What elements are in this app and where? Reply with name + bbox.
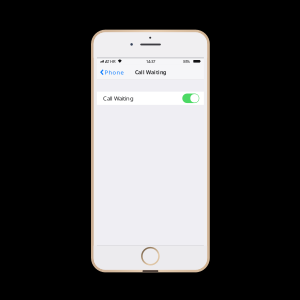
staticText: Call Waiting: [103, 94, 134, 102]
staticText: Phone: [105, 68, 124, 76]
staticText: 93%: [182, 58, 189, 64]
staticText: Call Waiting: [135, 69, 166, 76]
staticText: AT HR: [105, 58, 116, 64]
button[interactable]: Call Waiting: [97, 92, 204, 105]
button[interactable]: Phone: [99, 66, 124, 79]
staticText: 14:37: [146, 58, 155, 64]
